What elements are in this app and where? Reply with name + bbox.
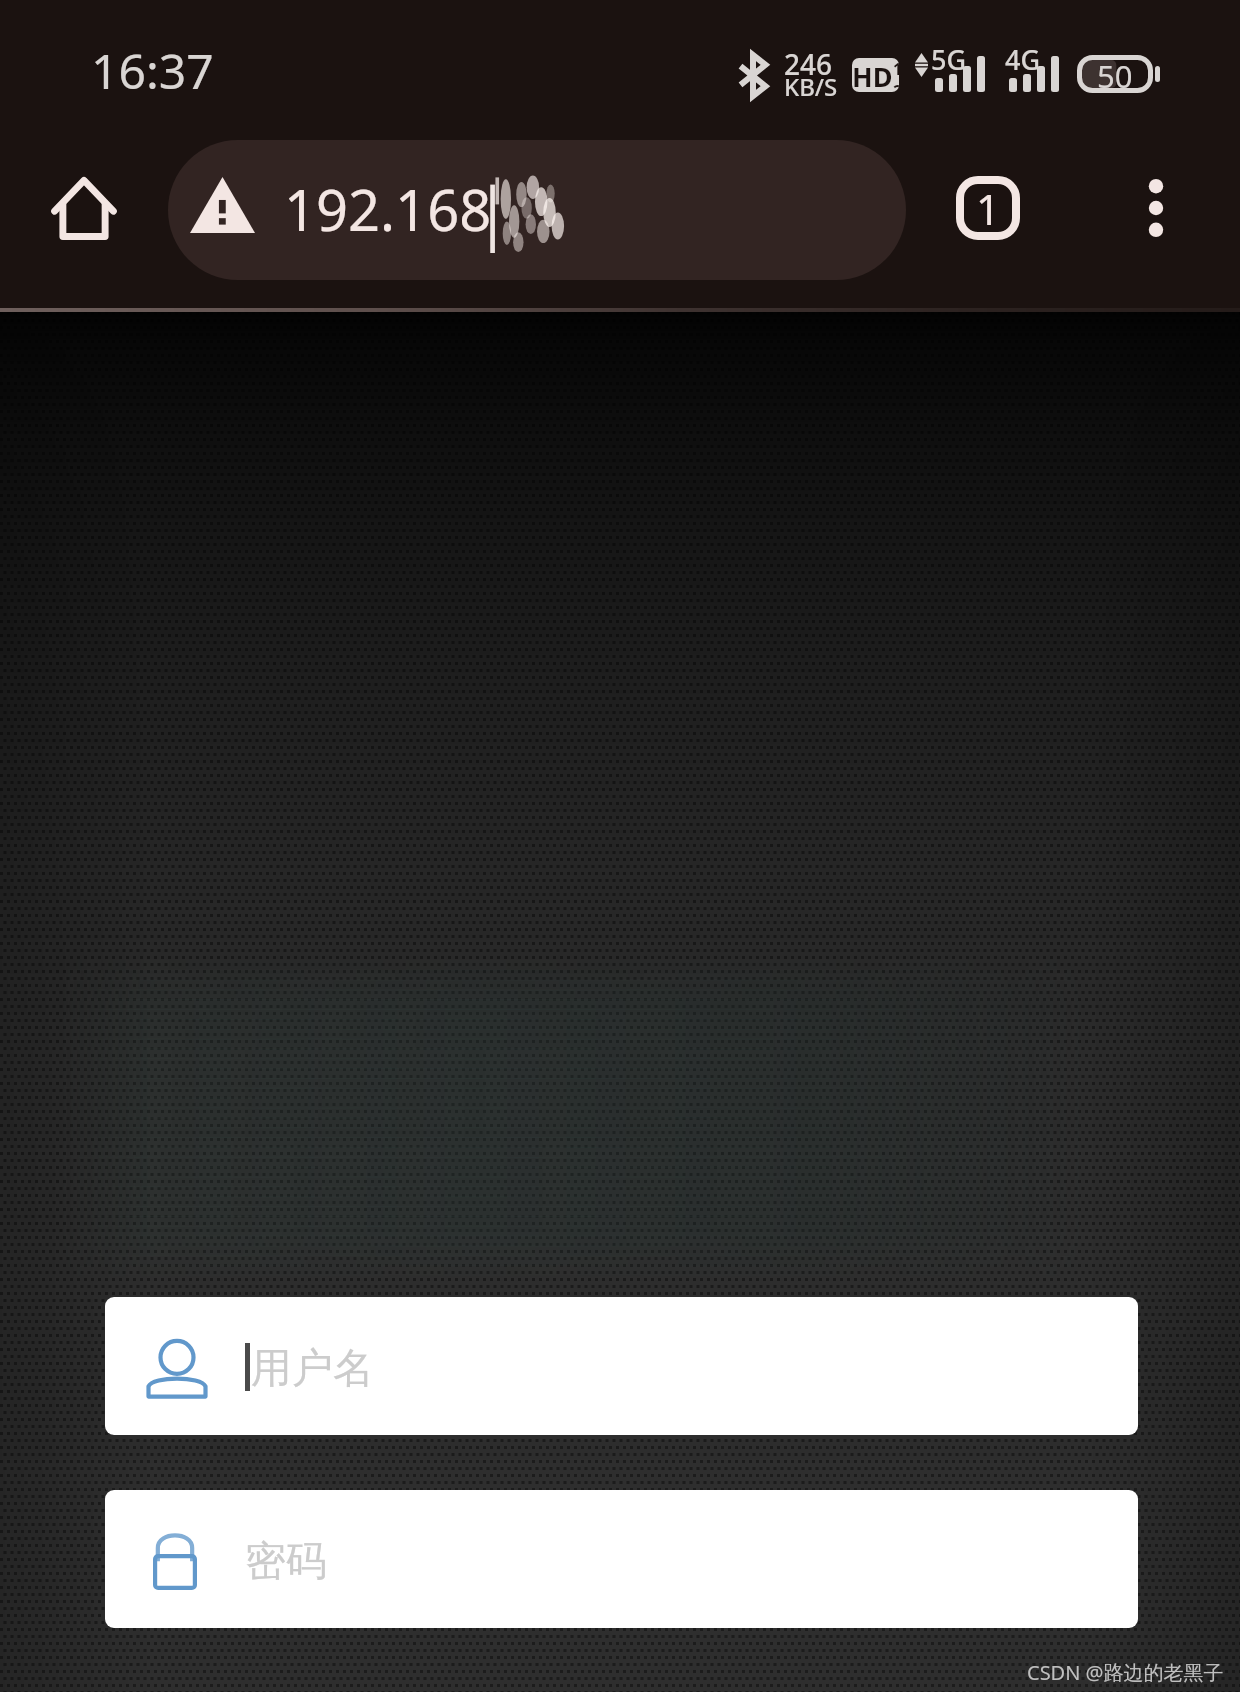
staticText: 5G [931, 41, 967, 78]
button[interactable]: 用户名 [105, 1297, 1138, 1435]
staticText: 16:37 [91, 38, 214, 103]
staticText: CSDN @路边的老黑子 [1027, 1659, 1224, 1686]
staticText: 192.168 [284, 171, 492, 247]
staticText: KB/S [784, 70, 838, 103]
button[interactable]: Home [38, 162, 130, 254]
button[interactable]: 密码 [105, 1490, 1138, 1628]
button[interactable]: More options [1110, 162, 1202, 254]
staticText: 2 [893, 80, 899, 92]
staticText: 1 [893, 58, 899, 80]
staticText: 用户名 [251, 1343, 374, 1395]
staticText: 4G [1005, 41, 1041, 78]
staticText: HD [852, 58, 893, 92]
staticText: 密码 [245, 1536, 327, 1588]
staticText: 1 [976, 180, 1001, 237]
button[interactable]: Tabs [942, 162, 1034, 254]
staticText: 246 [784, 45, 833, 83]
staticText: 50 [1097, 55, 1133, 93]
button[interactable]: 192.168 [168, 140, 906, 280]
